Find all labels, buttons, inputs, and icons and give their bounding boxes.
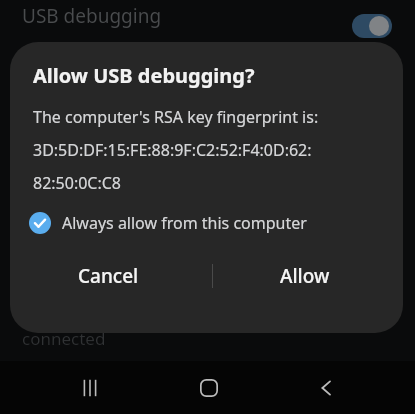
button[interactable]: Back [298,361,354,414]
staticText: 82:50:0C:C8 [33,172,122,194]
button[interactable]: Home [181,361,237,414]
button[interactable]: Allow [206,250,403,302]
staticText: 3D:5D:DF:15:FE:88:9F:C2:52:F4:0D:62: [33,139,312,161]
staticText: Allow USB debugging? [33,62,255,89]
button[interactable]: Always allow from this computer [29,212,315,234]
staticText: The computer's RSA key fingerprint is: [33,106,319,128]
button[interactable]: Cancel [10,250,206,302]
staticText: Always allow from this computer [62,212,307,234]
button[interactable]: USB debugging toggle [352,14,392,38]
staticText: connected [22,327,106,350]
button[interactable]: Recent apps [62,361,118,414]
staticText: Allow [280,263,330,289]
staticText: USB debugging [22,3,162,29]
staticText: Cancel [78,263,139,289]
